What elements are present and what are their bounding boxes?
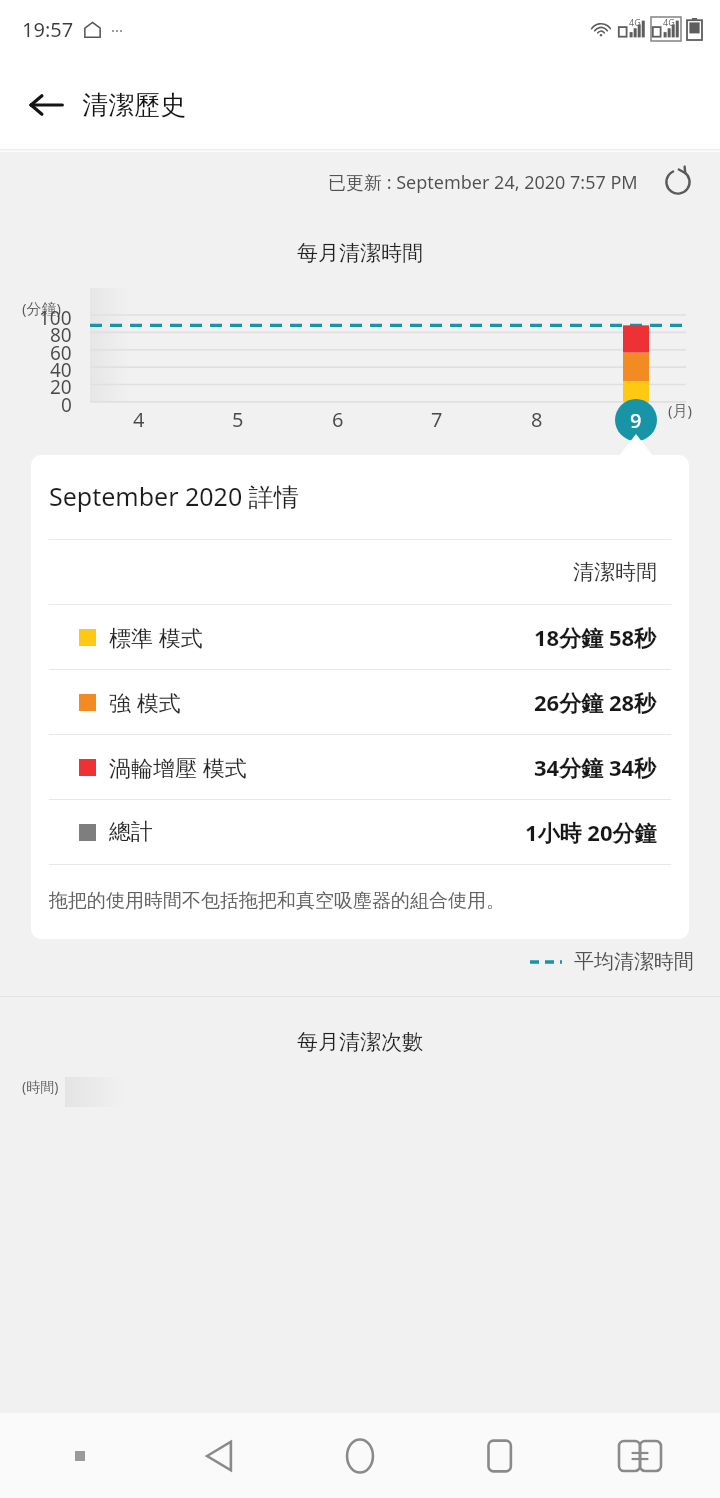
staticText: ··· bbox=[111, 20, 124, 40]
staticText: 清潔時間 bbox=[573, 559, 657, 585]
button[interactable]: 返回 bbox=[22, 81, 70, 129]
button[interactable]: 主畫面 bbox=[290, 1413, 430, 1498]
staticText: 標準 模式 bbox=[109, 622, 203, 652]
button[interactable]: 標準 模式 bbox=[49, 605, 671, 669]
staticText: (月) bbox=[668, 400, 693, 420]
staticText: 每月清潔時間 bbox=[0, 240, 720, 266]
staticText: 18分鐘 58秒 bbox=[534, 622, 657, 652]
staticText: (分鐘) bbox=[22, 298, 62, 318]
staticText: 26分鐘 28秒 bbox=[534, 687, 657, 717]
staticText: 34分鐘 34秒 bbox=[534, 752, 657, 782]
staticText: 20 bbox=[50, 374, 72, 400]
staticText: 拖把的使用時間不包括拖把和真空吸塵器的組合使用。 bbox=[49, 889, 505, 913]
staticText: 19:57 bbox=[22, 16, 74, 43]
button[interactable]: 分割畫面 bbox=[570, 1413, 710, 1498]
staticText: 1小時 20分鐘 bbox=[525, 817, 657, 847]
button[interactable]: 9 bbox=[615, 399, 657, 441]
staticText: 每月清潔次數 bbox=[0, 1029, 720, 1055]
staticText: September 2020 詳情 bbox=[49, 479, 299, 513]
staticText: 8 bbox=[531, 406, 543, 433]
staticText: 已更新 : September 24, 2020 7:57 PM bbox=[328, 170, 638, 195]
button[interactable]: 重新整理 bbox=[656, 160, 700, 204]
staticText: 6 bbox=[332, 406, 344, 433]
staticText: 5 bbox=[232, 406, 244, 433]
staticText: 4G bbox=[629, 16, 641, 28]
staticText: 4 bbox=[133, 406, 145, 433]
staticText: 9 bbox=[630, 407, 642, 434]
staticText: 60 bbox=[50, 340, 72, 366]
staticText: 0 bbox=[61, 392, 72, 418]
button[interactable]: 返回 bbox=[150, 1413, 290, 1498]
staticText: 100 bbox=[39, 305, 72, 331]
button[interactable]: 最近使用 bbox=[430, 1413, 570, 1498]
staticText: (時間) bbox=[22, 1077, 59, 1096]
staticText: 80 bbox=[50, 322, 72, 348]
staticText: 7 bbox=[431, 406, 443, 433]
staticText: 清潔歷史 bbox=[82, 89, 186, 122]
staticText: 平均清潔時間 bbox=[574, 949, 694, 974]
button[interactable]: 最近項目指示 bbox=[10, 1413, 150, 1498]
button[interactable]: 渦輪增壓 模式 bbox=[49, 735, 671, 799]
staticText: 渦輪增壓 模式 bbox=[109, 752, 247, 782]
staticText: 總計 bbox=[109, 818, 153, 846]
button[interactable]: 總計 bbox=[49, 800, 671, 864]
button[interactable]: 強 模式 bbox=[49, 670, 671, 734]
staticText: 強 模式 bbox=[109, 687, 181, 717]
staticText: 40 bbox=[50, 357, 72, 383]
staticText: 4G bbox=[663, 16, 675, 28]
